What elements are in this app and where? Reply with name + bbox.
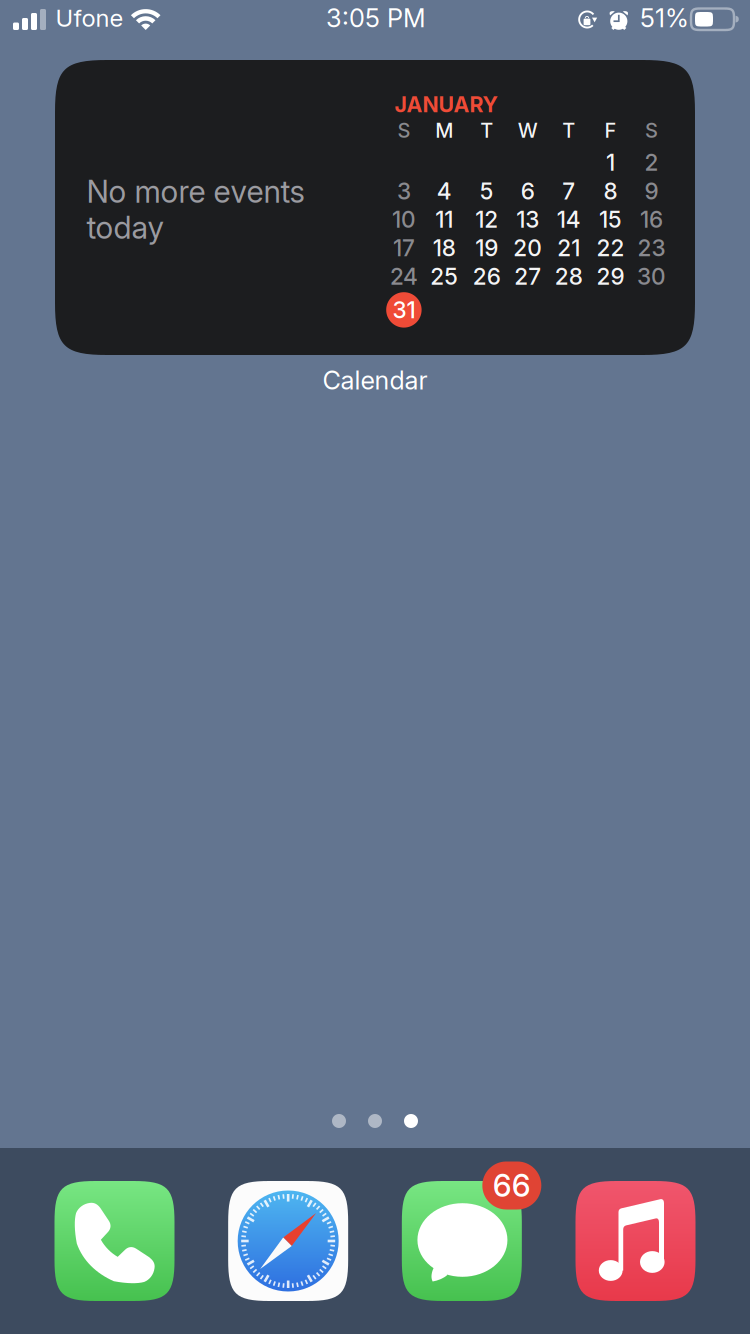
staticText: 19 bbox=[475, 234, 498, 262]
staticText: 27 bbox=[514, 263, 541, 290]
staticText: Calendar bbox=[322, 365, 427, 396]
staticText: 3 bbox=[397, 178, 411, 205]
staticText: 10 bbox=[392, 206, 416, 233]
staticText: 30 bbox=[637, 263, 666, 290]
staticText: No more events bbox=[86, 173, 304, 210]
staticText: 12 bbox=[475, 206, 498, 233]
staticText: 23 bbox=[638, 234, 666, 262]
button[interactable]: Calendar bbox=[322, 365, 427, 396]
staticText: 28 bbox=[555, 263, 583, 290]
staticText: Ufone bbox=[55, 3, 123, 32]
staticText: 4 bbox=[437, 178, 452, 205]
staticText: 51% bbox=[640, 3, 689, 33]
staticText: S bbox=[397, 118, 410, 142]
staticText: 25 bbox=[430, 263, 458, 290]
staticText: 13 bbox=[516, 206, 539, 233]
staticText: F bbox=[605, 118, 617, 142]
staticText: 21 bbox=[557, 234, 580, 262]
staticText: JANUARY bbox=[394, 91, 498, 117]
button[interactable]: Safari bbox=[228, 1181, 348, 1301]
staticText: today bbox=[86, 209, 163, 246]
staticText: 18 bbox=[433, 234, 456, 262]
staticText: 17 bbox=[393, 234, 415, 262]
staticText: 5 bbox=[480, 178, 494, 205]
staticText: S bbox=[645, 118, 658, 142]
staticText: 7 bbox=[562, 178, 575, 205]
staticText: 8 bbox=[604, 178, 618, 205]
staticText: 11 bbox=[435, 206, 453, 233]
staticText: 20 bbox=[513, 234, 542, 262]
staticText: 29 bbox=[597, 263, 625, 290]
staticText: 2 bbox=[645, 149, 659, 176]
staticText: 24 bbox=[390, 263, 418, 290]
staticText: 3:05 PM bbox=[326, 3, 426, 33]
staticText: 15 bbox=[599, 206, 622, 233]
staticText: M bbox=[435, 118, 453, 142]
staticText: 9 bbox=[645, 178, 659, 205]
button[interactable]: Music bbox=[575, 1181, 695, 1301]
staticText: 31 bbox=[392, 296, 415, 324]
staticText: 16 bbox=[640, 206, 663, 233]
staticText: 6 bbox=[521, 178, 535, 205]
button[interactable]: Phone bbox=[54, 1181, 174, 1301]
button[interactable]: No more events bbox=[55, 60, 695, 355]
staticText: T bbox=[480, 118, 493, 142]
staticText: 1 bbox=[606, 149, 615, 176]
staticText: W bbox=[518, 118, 538, 142]
staticText: 66 bbox=[493, 1167, 531, 1204]
button[interactable]: Messages, 66 unread bbox=[402, 1181, 522, 1301]
staticText: 22 bbox=[597, 234, 625, 262]
staticText: 14 bbox=[557, 206, 581, 233]
staticText: T bbox=[562, 118, 575, 142]
staticText: 26 bbox=[473, 263, 501, 290]
